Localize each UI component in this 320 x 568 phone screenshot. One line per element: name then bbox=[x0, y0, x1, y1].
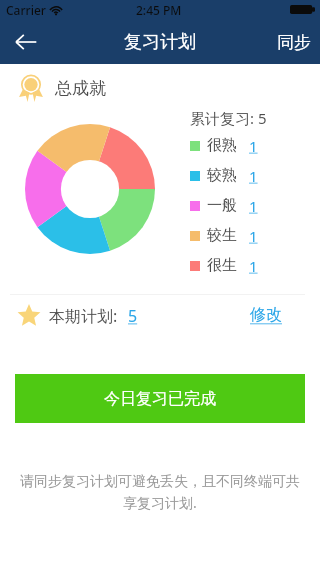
staticText: 1 bbox=[249, 256, 258, 276]
staticText: 同步 bbox=[277, 32, 311, 53]
staticText: 较熟 bbox=[207, 166, 237, 185]
staticText: Carrier bbox=[6, 2, 46, 18]
staticText: 5 bbox=[128, 305, 138, 327]
button[interactable]: 今日复习已完成 bbox=[15, 374, 305, 423]
button[interactable]: 很生 bbox=[188, 254, 268, 278]
staticText: 2:45 PM bbox=[136, 2, 182, 18]
staticText: 修改 bbox=[250, 305, 282, 325]
staticText: 请同步复习计划可避免丢失，且不同终端可共享复习计划. bbox=[18, 473, 302, 512]
staticText: 累计复习: 5 bbox=[190, 108, 267, 128]
button[interactable]: 较生 bbox=[188, 224, 268, 248]
button[interactable]: 很熟 bbox=[188, 134, 268, 158]
staticText: 本期计划: bbox=[49, 305, 118, 327]
staticText: 今日复习已完成 bbox=[104, 389, 216, 409]
staticText: 1 bbox=[249, 136, 258, 156]
button[interactable]: 修改 bbox=[250, 305, 282, 325]
staticText: 很生 bbox=[207, 256, 237, 275]
button[interactable]: 总成就 bbox=[16, 74, 116, 102]
button[interactable]: Back bbox=[10, 26, 42, 58]
staticText: 一般 bbox=[207, 196, 237, 215]
button[interactable]: 同步 bbox=[271, 26, 316, 58]
staticText: 1 bbox=[249, 196, 258, 216]
staticText: 复习计划 bbox=[124, 31, 196, 54]
button[interactable]: 一般 bbox=[188, 194, 268, 218]
staticText: 总成就 bbox=[55, 78, 106, 99]
button[interactable]: 较熟 bbox=[188, 164, 268, 188]
staticText: 1 bbox=[249, 166, 258, 186]
button[interactable]: 5 bbox=[128, 305, 138, 327]
staticText: 很熟 bbox=[207, 136, 237, 155]
staticText: 较生 bbox=[207, 226, 237, 245]
staticText: 1 bbox=[249, 226, 258, 246]
